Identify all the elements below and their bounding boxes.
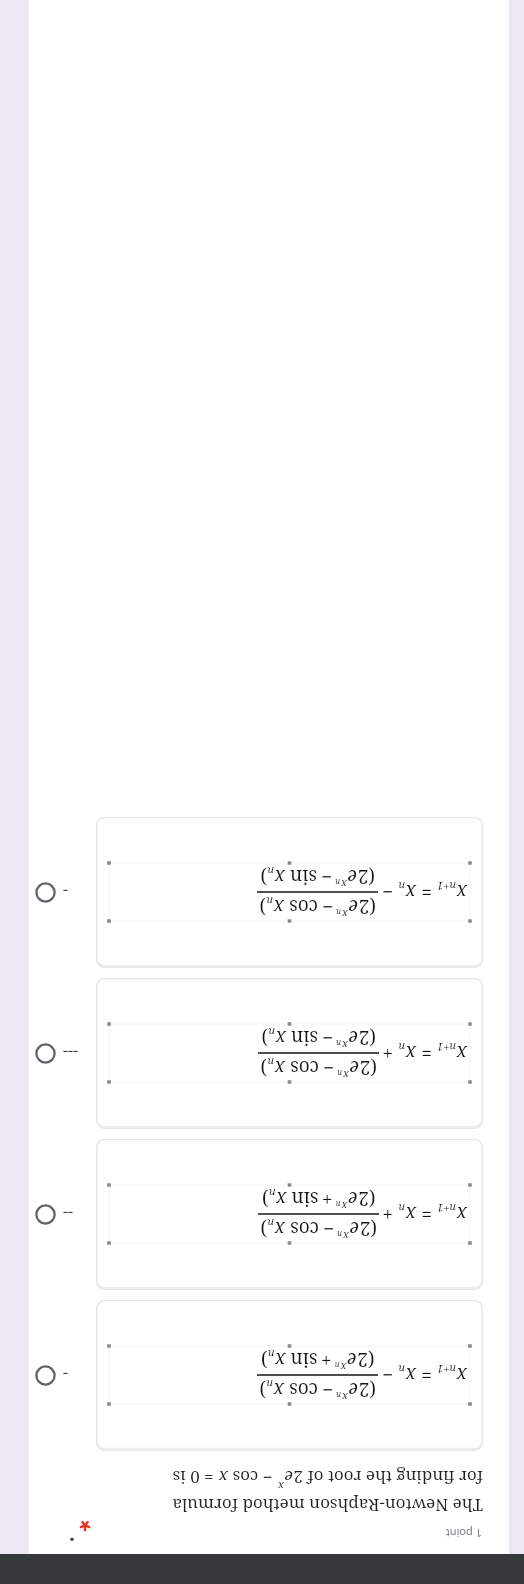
button[interactable]: Select this answer	[33, 1300, 91, 1451]
button[interactable]: Select this answer	[33, 1139, 91, 1290]
button[interactable]: Select this answer	[29, 817, 509, 968]
button[interactable]: Select this answer	[33, 817, 91, 968]
button[interactable]: Select this answer	[29, 1139, 509, 1290]
button[interactable]: Select this answer	[33, 978, 91, 1129]
button[interactable]: Select this answer	[29, 1300, 509, 1451]
button[interactable]: Select this answer	[29, 978, 509, 1129]
